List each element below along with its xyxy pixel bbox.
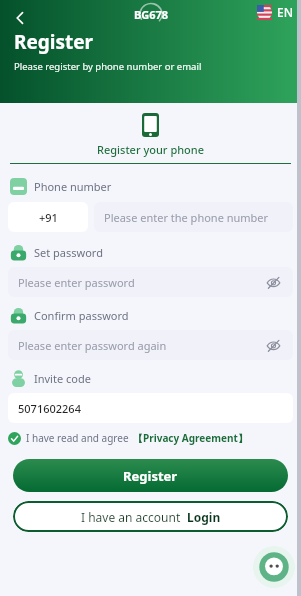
button[interactable]: 5071602264 xyxy=(8,393,293,423)
staticText: Register xyxy=(123,467,178,485)
staticText: +91 xyxy=(39,210,58,225)
button[interactable]: EN xyxy=(257,4,293,20)
staticText: Set password xyxy=(34,245,103,260)
button[interactable]: Please enter password xyxy=(8,267,293,297)
staticText: I have an account xyxy=(81,509,181,525)
staticText: BG678 xyxy=(134,7,169,22)
button[interactable]: I have an account xyxy=(13,501,288,532)
staticText: 5071602264 xyxy=(18,401,81,416)
staticText: Please enter password again xyxy=(18,338,263,353)
staticText: 【Privacy Agreement】 xyxy=(133,431,248,445)
staticText: Please enter password xyxy=(18,275,263,290)
staticText: Please enter the phone number xyxy=(104,210,269,225)
staticText: Register xyxy=(14,29,94,55)
button[interactable]: I have read and agree xyxy=(8,431,293,445)
button[interactable]: Show password xyxy=(263,272,283,292)
button[interactable]: Customer service chat xyxy=(253,546,295,588)
staticText: Register your phone xyxy=(97,142,205,157)
staticText: Phone number xyxy=(34,179,112,194)
button[interactable]: Register xyxy=(13,459,288,492)
staticText: Please register by phone number or email xyxy=(14,60,202,73)
button[interactable]: +91 xyxy=(8,202,88,232)
staticText: Confirm password xyxy=(34,308,129,323)
button[interactable]: Back xyxy=(4,2,36,34)
staticText: Login xyxy=(187,509,221,525)
button[interactable]: Please enter the phone number xyxy=(94,202,293,232)
staticText: I have read and agree xyxy=(26,431,129,445)
button[interactable]: Show password xyxy=(263,335,283,355)
staticText: EN xyxy=(277,4,293,20)
button[interactable]: Please enter password again xyxy=(8,330,293,360)
staticText: Invite code xyxy=(34,371,91,386)
